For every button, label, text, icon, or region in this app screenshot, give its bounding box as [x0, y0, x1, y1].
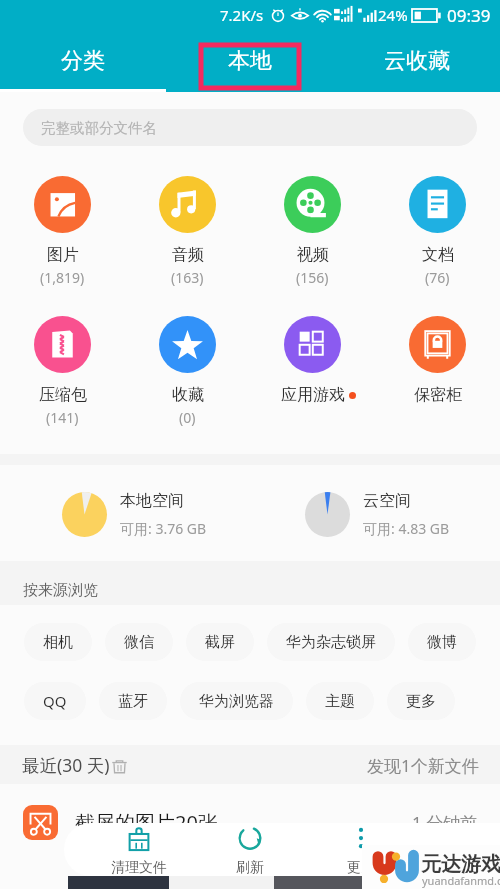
- button[interactable]: 相机: [24, 623, 92, 661]
- staticText: 保密柜: [414, 385, 462, 405]
- button[interactable]: 清理文件: [99, 826, 179, 884]
- button[interactable]: 应用游戏: [250, 316, 375, 405]
- staticText: 完整或部分文件名: [41, 119, 157, 137]
- staticText: 元达游戏: [421, 852, 500, 877]
- staticText: 视频: [297, 245, 329, 265]
- button[interactable]: 微信: [105, 623, 173, 661]
- staticText: 发现1个新文件: [367, 754, 479, 777]
- staticText: (76): [425, 268, 450, 287]
- staticText: 华为杂志锁屏: [286, 633, 376, 652]
- staticText: 应用游戏: [281, 385, 345, 405]
- staticText: yuandafanmd.com: [422, 873, 500, 888]
- button[interactable]: 压缩包: [0, 316, 125, 427]
- staticText: 截屏: [205, 633, 235, 652]
- staticText: 本地空间: [120, 491, 184, 511]
- staticText: 相机: [43, 633, 73, 652]
- button[interactable]: 完整或部分文件名: [23, 109, 477, 146]
- button[interactable]: 视频: [250, 176, 375, 287]
- staticText: 收藏: [172, 385, 204, 405]
- staticText: (163): [171, 268, 204, 287]
- staticText: 图片: [47, 245, 79, 265]
- staticText: 云收藏: [384, 47, 450, 75]
- staticText: 华为浏览器: [199, 692, 274, 711]
- button[interactable]: 图片: [0, 176, 125, 287]
- staticText: 可用: 3.76 GB: [120, 519, 207, 538]
- staticText: 刷新: [236, 859, 264, 877]
- button[interactable]: 更多: [387, 682, 455, 720]
- staticText: 最近(30 天): [22, 753, 110, 777]
- staticText: (0): [179, 408, 196, 427]
- staticText: 微信: [124, 633, 154, 652]
- staticText: 分类: [61, 47, 105, 75]
- button[interactable]: 本地空间: [62, 478, 207, 550]
- button[interactable]: 更多: [321, 826, 401, 884]
- staticText: 压缩包: [39, 385, 87, 405]
- button[interactable]: 文档: [375, 176, 500, 287]
- staticText: 可用: 4.83 GB: [363, 519, 450, 538]
- staticText: 7.2K/s: [220, 5, 264, 25]
- staticText: 微博: [427, 633, 457, 652]
- staticText: 更多: [347, 859, 375, 877]
- button[interactable]: 收藏: [125, 316, 250, 427]
- button[interactable]: 保密柜: [375, 316, 500, 405]
- staticText: (1,819): [40, 268, 85, 287]
- staticText: 文档: [422, 245, 454, 265]
- staticText: QQ: [43, 691, 67, 711]
- button[interactable]: 云收藏: [333, 30, 500, 92]
- button[interactable]: 华为浏览器: [180, 682, 293, 720]
- staticText: 本地: [228, 47, 272, 75]
- button[interactable]: 截屏: [186, 623, 254, 661]
- staticText: (156): [296, 268, 329, 287]
- staticText: 云空间: [363, 491, 411, 511]
- button[interactable]: 主题: [306, 682, 374, 720]
- staticText: 清理文件: [111, 859, 167, 877]
- button[interactable]: 微博: [408, 623, 476, 661]
- button[interactable]: 蓝牙: [99, 682, 167, 720]
- staticText: 主题: [325, 692, 355, 711]
- button[interactable]: 刷新: [210, 826, 290, 884]
- button[interactable]: 云空间: [305, 478, 450, 550]
- staticText: 1 分钟前: [412, 811, 478, 834]
- button[interactable]: 音频: [125, 176, 250, 287]
- other: Delete: [110, 756, 129, 775]
- staticText: 按来源浏览: [23, 581, 98, 600]
- staticText: 蓝牙: [118, 692, 148, 711]
- button[interactable]: 分类: [0, 30, 166, 92]
- staticText: 24%: [378, 5, 408, 25]
- staticText: 音频: [172, 245, 204, 265]
- button[interactable]: QQ: [24, 682, 86, 720]
- staticText: 截屏的图片20张: [75, 809, 218, 836]
- button[interactable]: 截屏的图片20张: [23, 793, 478, 851]
- staticText: 更多: [406, 692, 436, 711]
- staticText: (141): [46, 408, 79, 427]
- button[interactable]: 本地: [166, 30, 333, 92]
- staticText: 09:39: [447, 4, 491, 27]
- button[interactable]: 华为杂志锁屏: [267, 623, 395, 661]
